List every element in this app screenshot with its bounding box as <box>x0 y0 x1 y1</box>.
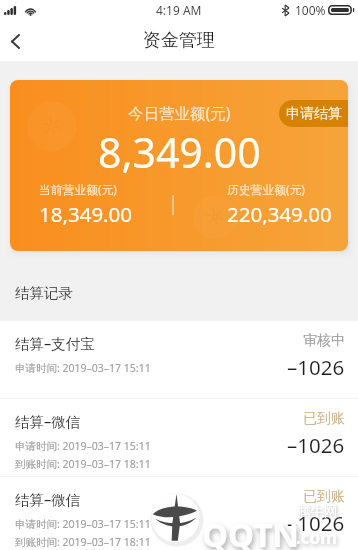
staticText: 申请结算 <box>286 105 342 123</box>
staticText: 申请时间: 2019–03–17 15:11 <box>15 439 151 453</box>
staticText: 220,349.00 <box>227 200 332 228</box>
button[interactable]: 结算–支付宝 <box>0 321 358 398</box>
staticText: 到账时间: 2019–03–17 18:11 <box>15 457 151 471</box>
staticText: 结算记录 <box>15 284 73 302</box>
staticText: 8,349.00 <box>98 124 261 180</box>
staticText: .com <box>296 526 337 549</box>
button[interactable]: 结算–微信 <box>0 399 358 476</box>
staticText: 历史营业额(元) <box>227 181 305 197</box>
staticText: 已到账 <box>303 410 345 428</box>
staticText: 当前营业额(元) <box>39 181 117 197</box>
button[interactable]: 申请结算 <box>279 100 348 127</box>
staticText: –1026 <box>287 509 345 537</box>
button[interactable]: Back <box>0 26 30 56</box>
staticText: 结算–支付宝 <box>15 333 95 353</box>
staticText: 结算–微信 <box>15 489 81 509</box>
staticText: 18,349.00 <box>39 200 133 228</box>
staticText: 资金管理 <box>143 29 215 52</box>
staticText: QQTN <box>202 512 300 550</box>
staticText: 腾牛网 <box>297 503 338 520</box>
staticText: 申请时间: 2019–03–17 15:11 <box>15 517 151 531</box>
staticText: 结算–微信 <box>15 411 81 431</box>
staticText: 到账时间: 2019–03–17 18:11 <box>15 535 151 549</box>
staticText: 审核中 <box>303 332 345 350</box>
staticText: 今日营业额(元) <box>128 102 231 123</box>
staticText: 申请时间: 2019–03–17 15:11 <box>15 361 151 375</box>
staticText: 已到账 <box>303 488 345 506</box>
staticText: 4:19 AM <box>156 2 202 18</box>
staticText: 100% <box>295 2 326 18</box>
staticText: –1026 <box>287 431 345 459</box>
staticText: –1026 <box>287 353 345 381</box>
button[interactable]: 结算–微信 <box>0 477 358 550</box>
